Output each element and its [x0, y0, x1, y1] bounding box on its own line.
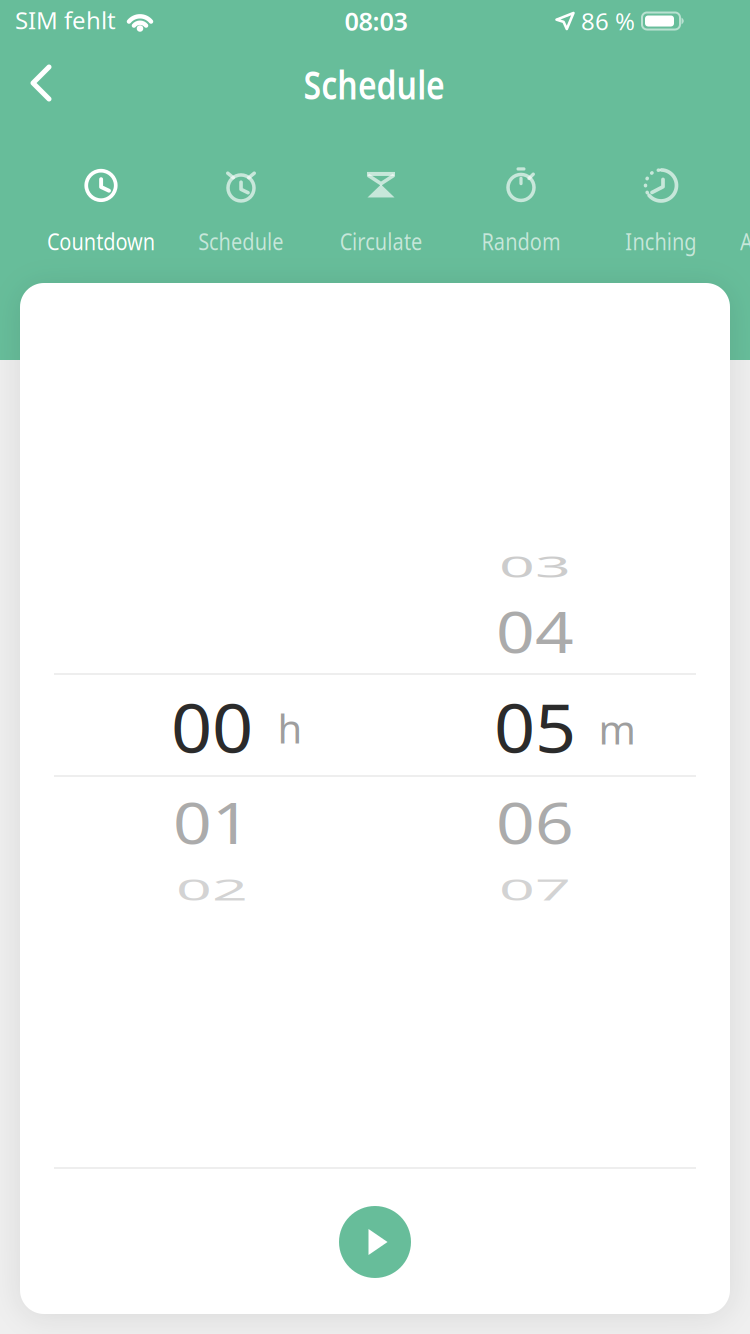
staticText: Circulate	[334, 226, 428, 256]
button[interactable]: Start	[339, 1206, 411, 1278]
staticText: Inching	[620, 226, 701, 256]
staticText: 03	[499, 524, 571, 608]
button[interactable]: Back	[19, 53, 63, 113]
staticText: h	[277, 701, 302, 754]
button[interactable]: Schedule	[192, 167, 289, 256]
staticText: 86 %	[581, 5, 635, 37]
button[interactable]: Random	[476, 167, 566, 256]
staticText: 05	[497, 683, 573, 771]
staticText: 06	[499, 780, 571, 864]
staticText: 00	[174, 683, 250, 771]
staticText: m	[598, 702, 635, 755]
button[interactable]: Countdown	[39, 167, 162, 256]
staticText: Schedule	[192, 226, 289, 256]
staticText: 02	[176, 847, 248, 931]
button[interactable]: Circulate	[334, 167, 428, 256]
staticText: 08:03	[344, 4, 407, 38]
button[interactable]: Astronomical	[731, 167, 750, 256]
staticText: Schedule	[286, 57, 462, 110]
staticText: Random	[476, 226, 566, 256]
staticText: Countdown	[39, 226, 162, 256]
button[interactable]: Inching	[620, 167, 701, 256]
staticText: SIM fehlt	[15, 4, 116, 36]
staticText: Astronomical	[731, 226, 750, 256]
staticText: 01	[176, 780, 248, 864]
staticText: 07	[499, 847, 571, 931]
staticText: 04	[499, 589, 571, 673]
